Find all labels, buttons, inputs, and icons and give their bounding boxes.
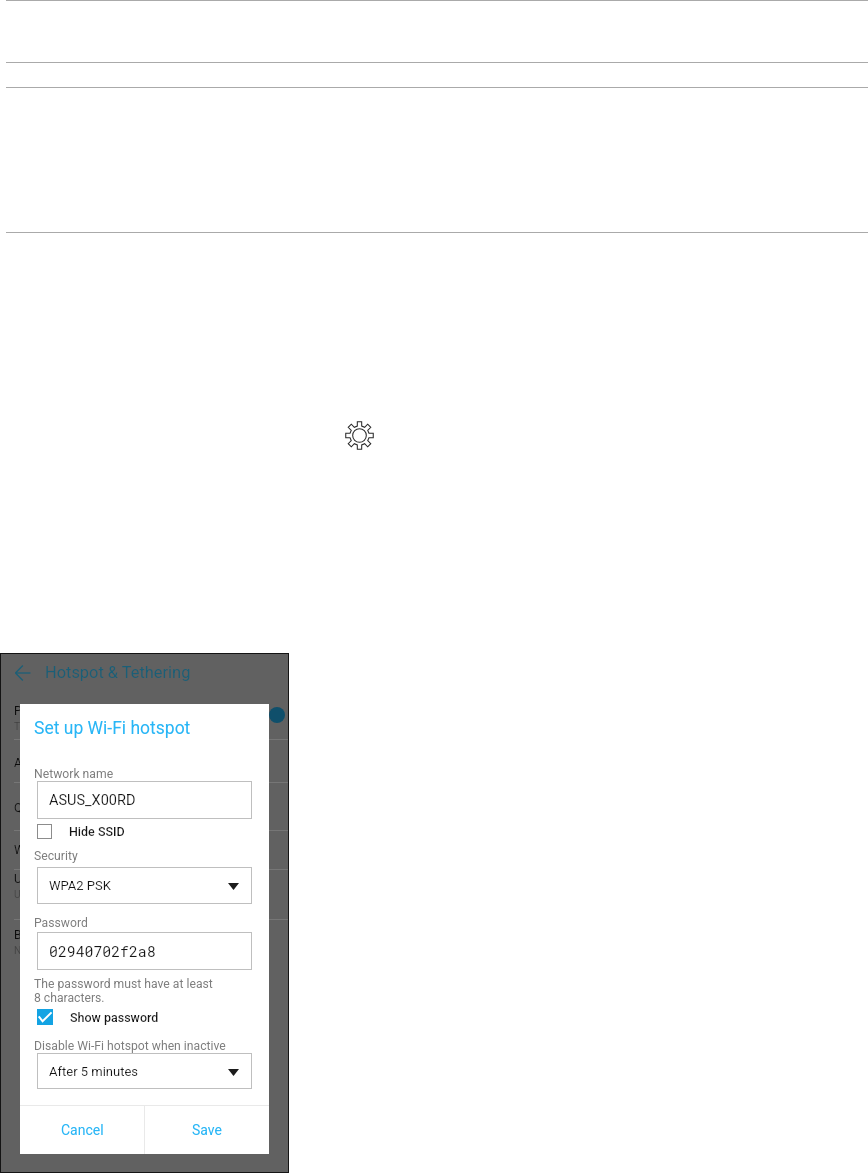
staticText: Set up Wi-Fi hotspot: [34, 718, 191, 739]
button[interactable]: Cancel: [20, 1106, 144, 1154]
staticText: Hide SSID: [69, 824, 125, 839]
button[interactable]: Portable Wi-Fi hotspot: [1, 700, 288, 740]
button[interactable]: Ap Band: [1, 740, 288, 783]
button[interactable]: Hide SSID: [37, 824, 125, 839]
staticText: Ap Band: [14, 756, 60, 770]
staticText: Cancel: [61, 1122, 104, 1138]
staticText: Bluetooth tethering: [14, 928, 118, 942]
staticText: ASUS_X00RD: [49, 792, 136, 809]
button[interactable]: Bluetooth tethering: [1, 919, 288, 964]
staticText: The password must have at least 8 charac…: [34, 977, 213, 1005]
button[interactable]: Settings: [345, 421, 374, 450]
staticText: WPA2 PSK: [49, 878, 230, 893]
staticText: Tethering or hotspot active: [14, 721, 136, 733]
staticText: USB not connected: [14, 889, 101, 901]
button[interactable]: Wi-Fi hotspot users: [1, 830, 288, 870]
button[interactable]: ASUS_X00RD: [37, 781, 252, 819]
staticText: Show password: [70, 1010, 159, 1025]
staticText: Wi-Fi hotspot users: [14, 843, 119, 857]
staticText: USB tethering: [14, 872, 89, 886]
button[interactable]: Save: [145, 1106, 269, 1154]
staticText: Security: [34, 849, 78, 863]
button[interactable]: Back: [14, 664, 32, 682]
button[interactable]: After 5 minutes: [37, 1053, 252, 1089]
staticText: Quick Share: [14, 801, 79, 815]
staticText: 02940702f2a8: [49, 941, 156, 961]
staticText: Network name: [34, 767, 114, 781]
button[interactable]: WPA2 PSK: [37, 867, 252, 904]
button[interactable]: 02940702f2a8: [37, 932, 252, 970]
button[interactable]: Show password: [37, 1009, 159, 1025]
staticText: Disable Wi-Fi hotspot when inactive: [34, 1039, 226, 1053]
staticText: Portable Wi-Fi hotspot: [14, 704, 135, 718]
button[interactable]: USB tethering: [1, 871, 288, 920]
staticText: After 5 minutes: [49, 1064, 230, 1079]
staticText: Password: [34, 916, 88, 930]
staticText: Not sharing this phone's: [14, 945, 124, 957]
button[interactable]: Quick Share: [1, 784, 288, 831]
staticText: Save: [192, 1122, 222, 1138]
staticText: Hotspot & Tethering: [45, 663, 191, 682]
